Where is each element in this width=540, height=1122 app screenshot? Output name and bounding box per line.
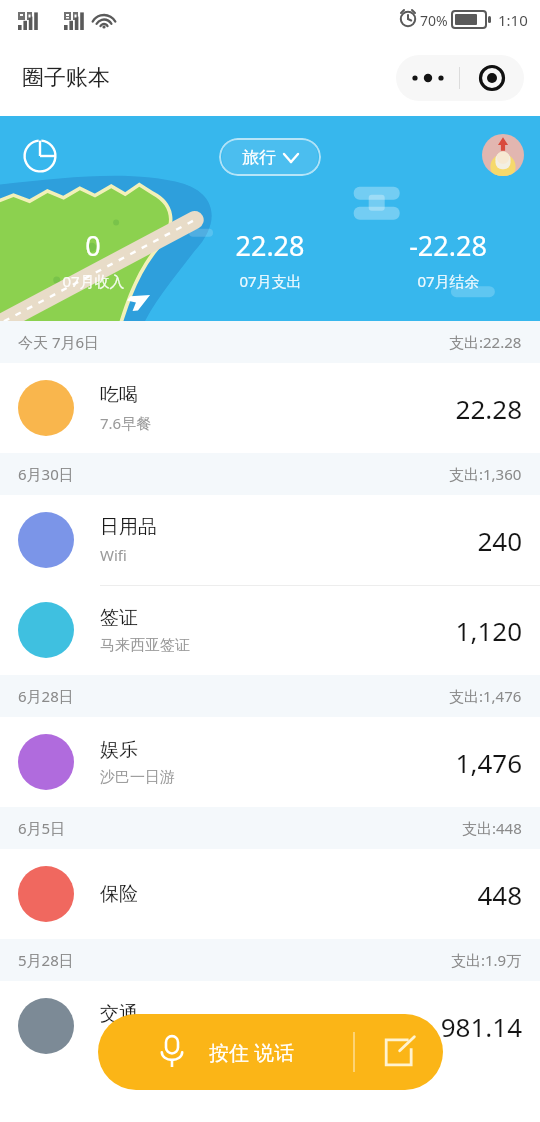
- staticText: 大巴车自由行: [100, 1032, 190, 1051]
- staticText: 1,120: [455, 613, 522, 648]
- button[interactable]: Write entry: [355, 1014, 443, 1090]
- staticText: 旅行: [242, 147, 276, 168]
- staticText: 按住 说话: [209, 1039, 295, 1066]
- staticText: 日用品: [100, 515, 157, 539]
- staticText: 448: [477, 877, 522, 912]
- staticText: 吃喝: [100, 383, 138, 407]
- button[interactable]: 吃喝: [0, 363, 540, 453]
- staticText: -22.28: [409, 227, 487, 264]
- button[interactable]: 旅行: [242, 138, 298, 176]
- staticText: 交通: [100, 1002, 138, 1026]
- staticText: 1:10: [498, 10, 528, 30]
- staticText: 保险: [100, 882, 138, 906]
- button[interactable]: Statistics: [18, 134, 62, 178]
- button[interactable]: 日用品: [0, 495, 540, 585]
- staticText: 1,476: [455, 745, 522, 780]
- button[interactable]: 按住 说话: [98, 1014, 443, 1090]
- staticText: 5月28日: [18, 950, 74, 970]
- staticText: 981.14: [440, 1009, 522, 1044]
- staticText: 07月支出: [239, 271, 302, 291]
- button[interactable]: 交通: [0, 981, 540, 1071]
- button[interactable]: 22.28: [185, 227, 355, 291]
- staticText: 签证: [100, 606, 138, 630]
- staticText: 0: [85, 227, 101, 264]
- staticText: 7.6早餐: [100, 413, 152, 433]
- staticText: 240: [477, 523, 522, 558]
- staticText: Wifi: [100, 545, 127, 565]
- staticText: 6月30日: [18, 464, 74, 484]
- staticText: 6月5日: [18, 818, 66, 838]
- staticText: 圈子账本: [22, 64, 110, 92]
- staticText: 娱乐: [100, 738, 138, 762]
- button[interactable]: 保险: [0, 849, 540, 939]
- button[interactable]: 0: [8, 227, 178, 291]
- button[interactable]: Group members: [482, 134, 524, 176]
- staticText: 支出:1,476: [449, 686, 522, 706]
- staticText: 沙巴一日游: [100, 768, 175, 787]
- staticText: 22.28: [235, 227, 305, 264]
- staticText: 马来西亚签证: [100, 636, 190, 655]
- button[interactable]: Scan: [460, 55, 524, 101]
- staticText: 支出:448: [462, 818, 522, 838]
- staticText: 22.28: [455, 391, 522, 426]
- staticText: 6月28日: [18, 686, 74, 706]
- staticText: 今天 7月6日: [18, 332, 100, 352]
- staticText: 支出:1.9万: [451, 950, 522, 970]
- staticText: 07月结余: [417, 271, 480, 291]
- staticText: 支出:22.28: [449, 332, 522, 352]
- staticText: 70%: [420, 11, 448, 30]
- button[interactable]: More options: [396, 55, 459, 101]
- button[interactable]: 娱乐: [0, 717, 540, 807]
- button[interactable]: 签证: [0, 585, 540, 675]
- staticText: 07月收入: [62, 271, 125, 291]
- staticText: 支出:1,360: [449, 464, 522, 484]
- button[interactable]: -22.28: [363, 227, 533, 291]
